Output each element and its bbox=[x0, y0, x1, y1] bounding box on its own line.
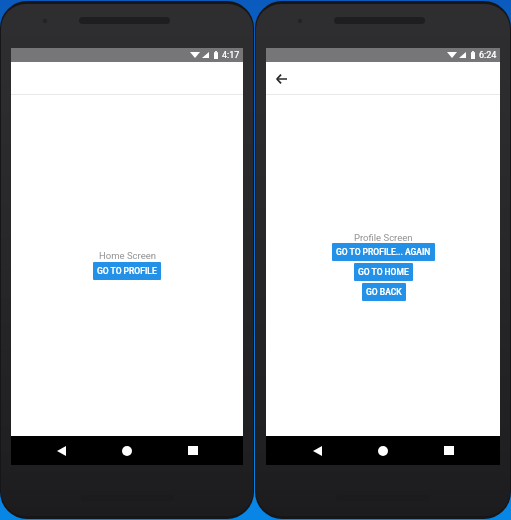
button[interactable]: Back bbox=[270, 68, 292, 90]
button[interactable]: Recents bbox=[170, 436, 216, 465]
button[interactable]: Home bbox=[360, 436, 406, 465]
button[interactable]: Recents bbox=[426, 436, 472, 465]
staticText: GO TO PROFILE bbox=[97, 266, 157, 276]
button[interactable]: GO BACK bbox=[362, 283, 406, 301]
staticText: GO TO PROFILE... AGAIN bbox=[336, 247, 431, 257]
button[interactable]: Home bbox=[104, 436, 150, 465]
staticText: 4:17 bbox=[222, 50, 240, 61]
staticText: Profile Screen bbox=[354, 232, 413, 243]
staticText: Home Screen bbox=[99, 250, 156, 261]
staticText: GO TO HOME bbox=[358, 267, 409, 277]
button[interactable]: GO TO HOME bbox=[354, 263, 413, 281]
button[interactable]: Back bbox=[294, 436, 340, 465]
button[interactable]: Back bbox=[38, 436, 84, 465]
button[interactable]: GO TO PROFILE... AGAIN bbox=[332, 243, 435, 261]
staticText: GO BACK bbox=[366, 287, 402, 297]
staticText: 6:24 bbox=[479, 50, 497, 61]
button[interactable]: GO TO PROFILE bbox=[93, 262, 161, 280]
